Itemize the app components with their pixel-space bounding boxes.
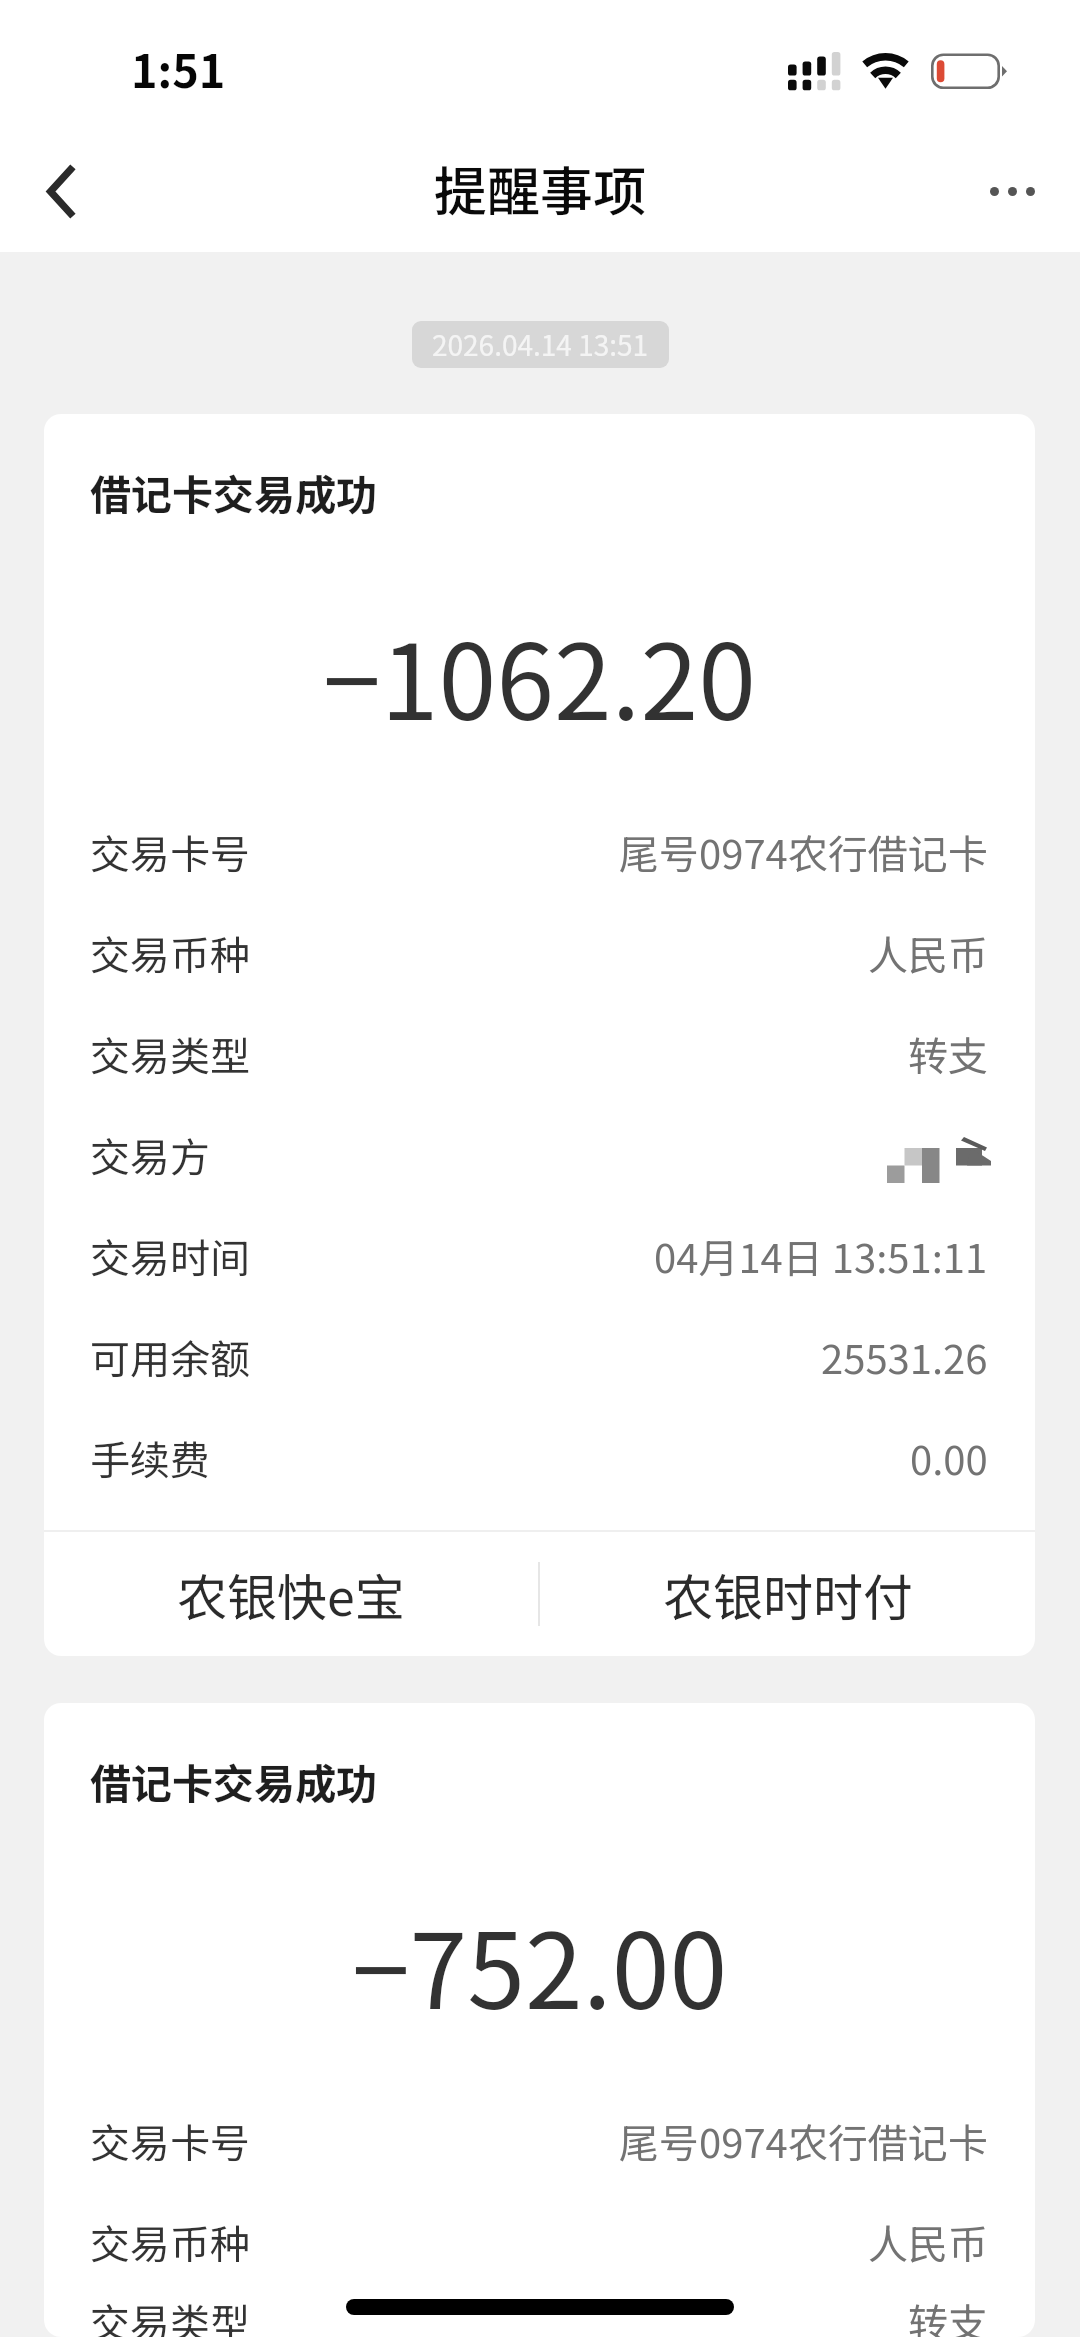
staticText: −752.00 xyxy=(44,1888,1035,2039)
button[interactable]: 借记卡交易成功 xyxy=(44,414,1035,1656)
staticText: 交易币种 xyxy=(90,924,250,982)
button[interactable]: 借记卡交易成功 xyxy=(44,1703,1035,2337)
staticText: 交易卡号 xyxy=(90,823,250,881)
staticText: 交易卡号 xyxy=(90,2112,250,2170)
staticText: 2026.04.14 13:51 xyxy=(432,324,649,365)
button[interactable]: Back xyxy=(0,130,120,252)
staticText: 提醒事项 xyxy=(434,150,646,227)
button[interactable]: 农银时时付 xyxy=(540,1532,1035,1656)
staticText: 尾号0974农行借记卡 xyxy=(619,823,988,881)
staticText: 转支 xyxy=(908,2292,988,2337)
staticText: 04月14日 13:51:11 xyxy=(654,1227,988,1285)
staticText: 交易时间 xyxy=(90,1227,250,1285)
staticText: −1062.20 xyxy=(44,599,1035,750)
staticText: 农银快e宝 xyxy=(177,1558,405,1630)
staticText: 农银时时付 xyxy=(663,1558,913,1630)
staticText: 0.00 xyxy=(910,1429,988,1487)
staticText: 可用余额 xyxy=(90,1328,250,1386)
staticText: 25531.26 xyxy=(821,1328,988,1386)
staticText: 借记卡交易成功 xyxy=(90,1751,377,1810)
staticText: 借记卡交易成功 xyxy=(90,462,377,521)
staticText: 交易币种 xyxy=(90,2213,250,2271)
button[interactable]: 农银快e宝 xyxy=(44,1532,538,1656)
staticText: 交易方 xyxy=(90,1126,210,1184)
button[interactable]: More options xyxy=(957,130,1067,252)
staticText: 转支 xyxy=(908,1025,988,1083)
staticText: 人民币 xyxy=(868,2213,988,2271)
staticText: 交易类型 xyxy=(90,1025,250,1083)
staticText: 手续费 xyxy=(90,1429,210,1487)
staticText: 尾号0974农行借记卡 xyxy=(619,2112,988,2170)
staticText: 1:51 xyxy=(131,36,226,101)
staticText: 人民币 xyxy=(868,924,988,982)
staticText: 交易类型 xyxy=(90,2292,250,2337)
